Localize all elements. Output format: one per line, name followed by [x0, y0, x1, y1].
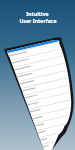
staticText: User Interface: [19, 17, 57, 24]
staticText: Intuitive: [26, 10, 49, 17]
